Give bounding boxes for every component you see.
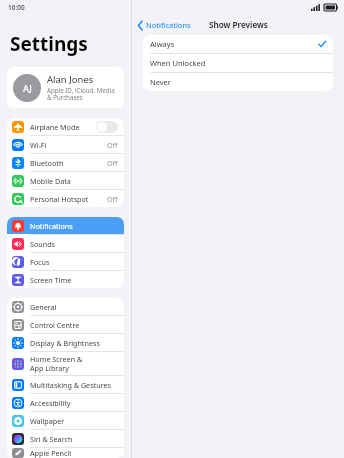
staticText: Notifications	[146, 20, 191, 30]
staticText: Notifications	[30, 221, 118, 231]
button[interactable]: Notifications	[132, 18, 195, 32]
button[interactable]: When Unlocked	[143, 54, 333, 72]
staticText: Home Screen & App Library	[30, 354, 118, 373]
staticText: AJ	[23, 82, 32, 94]
button[interactable]: Wi-Fi	[7, 136, 124, 153]
button[interactable]: AJ	[7, 67, 124, 108]
staticText: Accessibility	[30, 398, 118, 408]
button[interactable]: Notifications	[7, 217, 124, 234]
button[interactable]: Mobile Data	[7, 172, 124, 189]
staticText: Show Previews	[209, 19, 268, 30]
staticText: Airplane Mode	[30, 122, 96, 132]
staticText: Display & Brightness	[30, 338, 118, 348]
button[interactable]: Airplane Mode	[7, 118, 124, 135]
button[interactable]: Always	[143, 35, 333, 53]
button[interactable]: Sounds	[7, 235, 124, 252]
button[interactable]: Personal Hotspot	[7, 190, 124, 207]
staticText: Settings	[10, 31, 88, 57]
button[interactable]: Apple Pencil	[7, 448, 124, 458]
staticText: Personal Hotspot	[30, 194, 107, 204]
button[interactable]: Airplane Mode toggle	[96, 121, 118, 133]
button[interactable]: Never	[143, 73, 333, 91]
button[interactable]: Wallpaper	[7, 412, 124, 429]
button[interactable]: Screen Time	[7, 271, 124, 288]
staticText: General	[30, 302, 118, 312]
staticText: Off	[107, 140, 118, 150]
button[interactable]: Focus	[7, 253, 124, 270]
button[interactable]: Home Screen & App Library	[7, 352, 124, 375]
button[interactable]: Display & Brightness	[7, 334, 124, 351]
staticText: Mobile Data	[30, 176, 118, 186]
staticText: Bluetooth	[30, 158, 107, 168]
staticText: Off	[107, 194, 118, 204]
staticText: Wallpaper	[30, 416, 118, 426]
button[interactable]: Accessibility	[7, 394, 124, 411]
button[interactable]: General	[7, 298, 124, 315]
staticText: Apple Pencil	[30, 448, 118, 458]
staticText: Off	[107, 158, 118, 168]
button[interactable]: Multitasking & Gestures	[7, 376, 124, 393]
staticText: Always	[150, 39, 318, 49]
button[interactable]: Siri & Search	[7, 430, 124, 447]
button[interactable]: Control Centre	[7, 316, 124, 333]
staticText: When Unlocked	[150, 58, 326, 68]
staticText: Sounds	[30, 239, 118, 249]
staticText: 10:00	[8, 3, 25, 12]
staticText: Alan Jones	[47, 73, 94, 86]
staticText: Never	[150, 77, 326, 87]
staticText: Control Centre	[30, 320, 118, 330]
staticText: Wi-Fi	[30, 140, 107, 150]
staticText: Multitasking & Gestures	[30, 380, 118, 390]
button[interactable]: Bluetooth	[7, 154, 124, 171]
staticText: Apple ID, iCloud, Media & Purchases	[47, 86, 115, 102]
staticText: Siri & Search	[30, 434, 118, 444]
staticText: Focus	[30, 257, 118, 267]
staticText: Screen Time	[30, 275, 118, 285]
